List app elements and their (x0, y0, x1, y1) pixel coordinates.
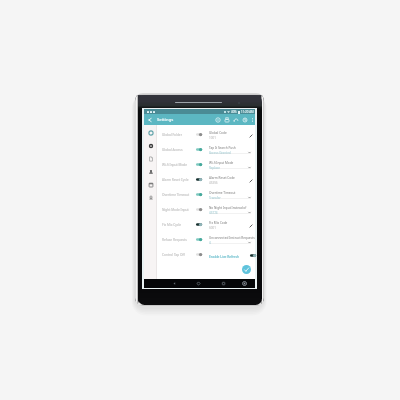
button[interactable]: History (242, 117, 248, 123)
staticText: Unconnected Instruct Requests (209, 236, 255, 240)
button[interactable]: Expand (248, 151, 251, 154)
staticText: Transfer (209, 196, 221, 200)
staticText: 11:20 AM (241, 110, 254, 114)
button[interactable]: Global Code (209, 128, 257, 143)
button[interactable]: Expand (248, 196, 251, 199)
staticText: Enable Live Refresh (209, 254, 240, 258)
button[interactable]: Back (147, 117, 153, 123)
staticText: Overtime Timeout (209, 191, 236, 195)
button[interactable]: Settings (144, 126, 157, 139)
button[interactable]: Save (215, 117, 221, 123)
button[interactable]: Home (196, 281, 201, 286)
button[interactable]: Recent apps (221, 281, 226, 286)
button[interactable]: Info (144, 191, 157, 204)
button[interactable]: Edit (249, 134, 253, 138)
button[interactable]: Expand (248, 241, 251, 244)
staticText: Control Tap Off (162, 253, 185, 257)
button[interactable]: Fix Mix Code (209, 218, 257, 233)
button[interactable]: Confirm (242, 265, 251, 274)
staticText: 45356 (209, 181, 218, 185)
staticText: Overtime Timeout (162, 193, 190, 197)
button[interactable]: Camera (242, 281, 247, 286)
button[interactable]: Calendar (144, 178, 157, 191)
button[interactable]: Global Access (162, 142, 203, 157)
staticText: 40% (231, 110, 237, 114)
button[interactable]: More options (251, 117, 254, 123)
button[interactable]: Account (144, 165, 157, 178)
staticText: Settings (157, 117, 174, 123)
staticText: Global Access (162, 148, 183, 152)
button[interactable]: Dashboard (144, 139, 157, 152)
button[interactable]: Undo (233, 117, 239, 123)
button[interactable]: Print (224, 117, 230, 123)
staticText: Fix Mix Cycle (162, 223, 182, 227)
staticText: 4 (209, 241, 211, 245)
button[interactable]: Fix Mix Cycle (162, 217, 203, 232)
button[interactable]: Wi-fi Input Mode (162, 157, 203, 172)
button[interactable]: Edit (249, 224, 253, 228)
button[interactable]: Overtime Timeout (209, 188, 257, 203)
staticText: Global Folder (162, 133, 182, 137)
staticText: 1001 (209, 136, 216, 140)
button[interactable]: Back (172, 281, 177, 286)
button[interactable]: Edit (249, 179, 253, 183)
staticText: No Night Input Instead of (209, 206, 247, 210)
button[interactable]: Alarm Reset Code (209, 173, 257, 188)
button[interactable]: Documents (144, 152, 157, 165)
staticText: Alarm Reset Cycle (162, 178, 189, 182)
button[interactable]: Alarm Reset Cycle (162, 172, 203, 187)
staticText: Global Code (209, 131, 227, 135)
staticText: Tap It Search Push (209, 146, 236, 150)
button[interactable]: Wi-fi Input Mode (209, 158, 257, 173)
button[interactable]: Overtime Timeout (162, 187, 203, 202)
button[interactable]: No Night Input Instead of (209, 203, 257, 218)
button[interactable]: Enable Live Refresh (209, 248, 257, 263)
button[interactable]: Unconnected Instruct Requests (209, 233, 257, 248)
button[interactable]: Refuse Requests (162, 232, 203, 247)
staticText: Wi-fi Input Mode (209, 161, 234, 165)
button[interactable]: Global Folder (162, 127, 203, 142)
staticText: 45774 (209, 211, 218, 215)
staticText: Refuse Requests (162, 238, 187, 242)
staticText: Wi-fi Input Mode (162, 163, 188, 167)
staticText: Access Granted (209, 151, 231, 155)
staticText: Alarm Reset Code (209, 176, 235, 180)
button[interactable]: Tap It Search Push (209, 143, 257, 158)
button[interactable]: Expand (248, 211, 251, 214)
staticText: Replace (209, 166, 220, 170)
staticText: Night Mode Input (162, 208, 189, 212)
button[interactable]: Control Tap Off (162, 247, 203, 262)
staticText: Fix Mix Code (209, 221, 228, 225)
button[interactable]: Expand (248, 166, 251, 169)
staticText: 6001 (209, 226, 216, 230)
button[interactable]: Night Mode Input (162, 202, 203, 217)
